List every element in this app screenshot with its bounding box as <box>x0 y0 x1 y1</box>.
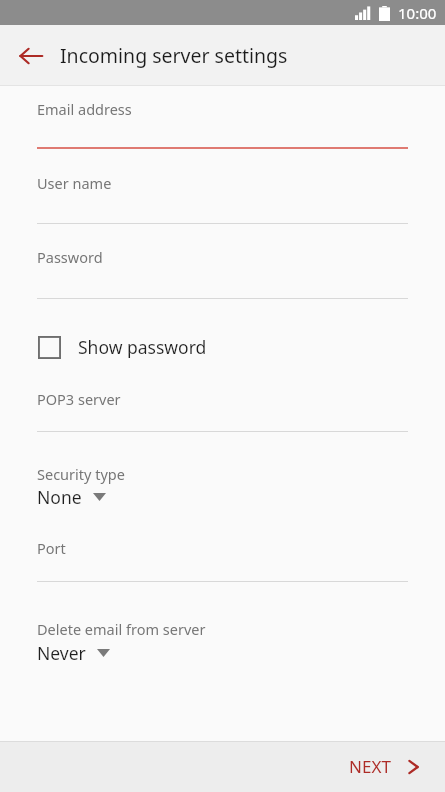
staticText: Never <box>37 641 86 665</box>
button[interactable]: Show password <box>0 327 445 367</box>
staticText: Security type <box>37 464 125 484</box>
staticText: None <box>37 485 82 509</box>
staticText: NEXT <box>349 755 391 778</box>
staticText: Delete email from server <box>37 619 206 639</box>
button[interactable]: Back <box>8 33 54 79</box>
button[interactable]: Never <box>0 636 445 670</box>
staticText: Port <box>37 538 66 558</box>
staticText: POP3 server <box>37 389 121 409</box>
staticText: Email address <box>37 99 132 119</box>
button[interactable]: None <box>0 480 445 514</box>
staticText: Password <box>37 247 103 267</box>
staticText: Incoming server settings <box>60 42 288 69</box>
staticText: 10:00 <box>398 3 437 23</box>
staticText: User name <box>37 173 112 193</box>
staticText: Show password <box>78 335 207 359</box>
button[interactable]: NEXT <box>329 741 445 792</box>
